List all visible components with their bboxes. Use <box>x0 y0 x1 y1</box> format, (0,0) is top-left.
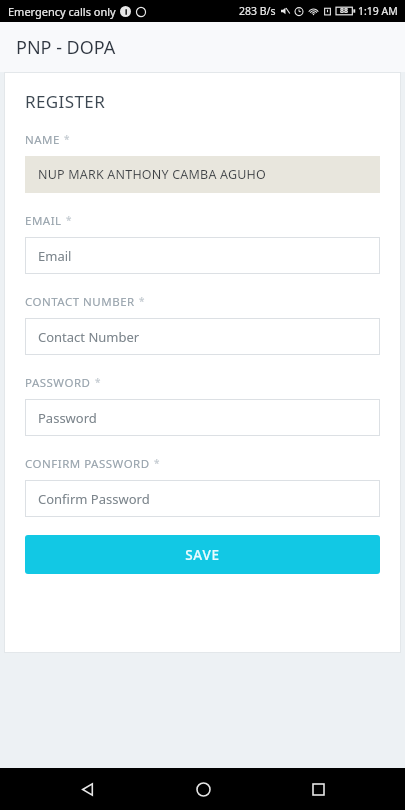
staticText: * <box>64 132 70 146</box>
button[interactable]: Password <box>25 399 380 436</box>
staticText: REGISTER <box>25 90 106 113</box>
staticText: * <box>95 375 101 389</box>
staticText: NAME <box>25 132 60 148</box>
button[interactable]: Home <box>175 768 231 810</box>
button[interactable]: Contact Number <box>25 318 380 355</box>
staticText: 283 B/s <box>239 4 276 18</box>
staticText: Emergency calls only <box>8 4 116 19</box>
button[interactable]: Email <box>25 237 380 274</box>
staticText: CONTACT NUMBER <box>25 294 135 310</box>
button[interactable]: Recent apps <box>290 768 346 810</box>
button[interactable]: SAVE <box>25 535 380 574</box>
staticText: Confirm Password <box>38 490 150 508</box>
staticText: * <box>154 456 160 470</box>
button[interactable]: Back <box>59 768 115 810</box>
staticText: Contact Number <box>38 328 140 346</box>
staticText: PASSWORD <box>25 375 91 391</box>
staticText: NUP MARK ANTHONY CAMBA AGUHO <box>38 166 267 183</box>
staticText: Email <box>38 247 72 265</box>
staticText: 1:19 AM <box>358 4 398 18</box>
staticText: PNP - DOPA <box>16 35 116 60</box>
staticText: * <box>139 294 145 308</box>
button[interactable]: Confirm Password <box>25 480 380 517</box>
staticText: CONFIRM PASSWORD <box>25 456 150 472</box>
staticText: EMAIL <box>25 213 62 229</box>
staticText: SAVE <box>185 546 220 564</box>
button[interactable]: NUP MARK ANTHONY CAMBA AGUHO <box>25 156 380 193</box>
staticText: * <box>66 213 72 227</box>
staticText: 88 <box>340 6 349 16</box>
staticText: Password <box>38 409 97 427</box>
